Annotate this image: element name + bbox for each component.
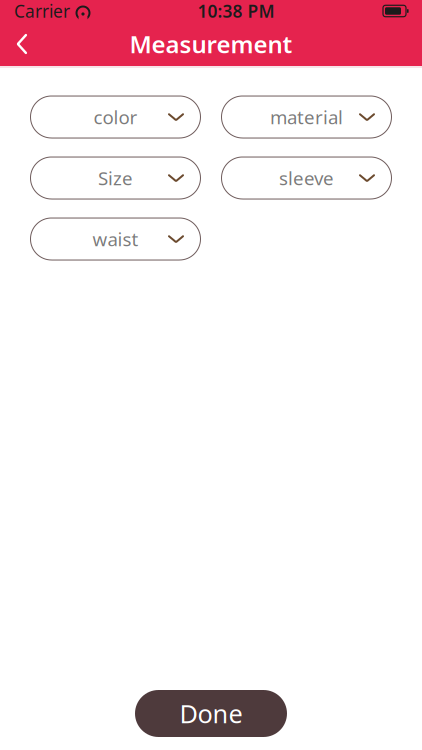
button[interactable]: color: [30, 96, 200, 138]
button[interactable]: waist: [30, 218, 200, 260]
button[interactable]: material: [221, 96, 391, 138]
button[interactable]: Done: [135, 690, 287, 737]
button[interactable]: sleeve: [221, 157, 391, 199]
button[interactable]: Size: [30, 157, 200, 199]
staticText: sleeve: [279, 166, 334, 190]
staticText: Measurement: [129, 28, 292, 60]
staticText: Carrier: [14, 0, 70, 22]
staticText: color: [93, 105, 137, 129]
staticText: 10:38 PM: [197, 0, 274, 22]
staticText: material: [270, 105, 343, 129]
staticText: Size: [98, 166, 133, 190]
staticText: Done: [179, 697, 242, 730]
button[interactable]: Back: [0, 22, 44, 66]
staticText: waist: [92, 227, 138, 251]
